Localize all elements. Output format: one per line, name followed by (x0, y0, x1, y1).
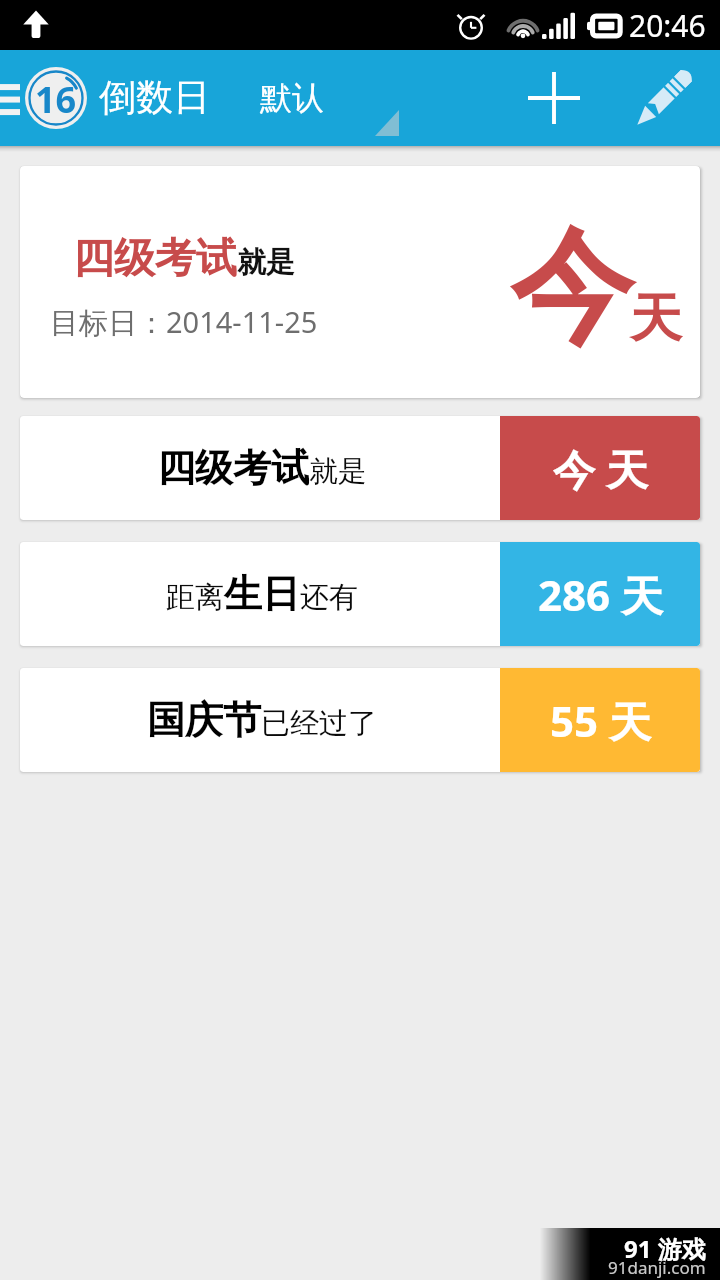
staticText: 四级考试就是 (73, 233, 295, 285)
button[interactable]: 默认 (260, 78, 324, 118)
button[interactable]: Menu (0, 69, 20, 127)
staticText: 距离生日还有 (166, 570, 358, 618)
button[interactable]: 四级考试就是 (20, 416, 700, 520)
button[interactable]: Edit (628, 62, 700, 134)
staticText: 天 (630, 286, 682, 352)
button[interactable]: 四级考试就是 (20, 166, 700, 398)
staticText: 四级考试就是 (157, 444, 367, 492)
button[interactable]: 国庆节已经过了 (20, 668, 700, 772)
button[interactable]: 距离生日还有 (20, 542, 700, 646)
staticText: 91danji.com (608, 1256, 706, 1279)
staticText: 国庆节已经过了 (147, 696, 377, 744)
staticText: 倒数日 (99, 74, 210, 121)
staticText: 20:46 (629, 5, 706, 46)
staticText: 55 天 (550, 692, 651, 749)
staticText: 91 游戏 (624, 1232, 706, 1265)
staticText: 今 (510, 211, 634, 367)
button[interactable]: Add (518, 62, 590, 134)
staticText: 今 天 (553, 440, 648, 497)
staticText: 目标日：2014-11-25 (50, 302, 318, 342)
staticText: 默认 (260, 78, 324, 118)
staticText: 16 (35, 75, 77, 124)
staticText: 286 天 (538, 566, 663, 623)
